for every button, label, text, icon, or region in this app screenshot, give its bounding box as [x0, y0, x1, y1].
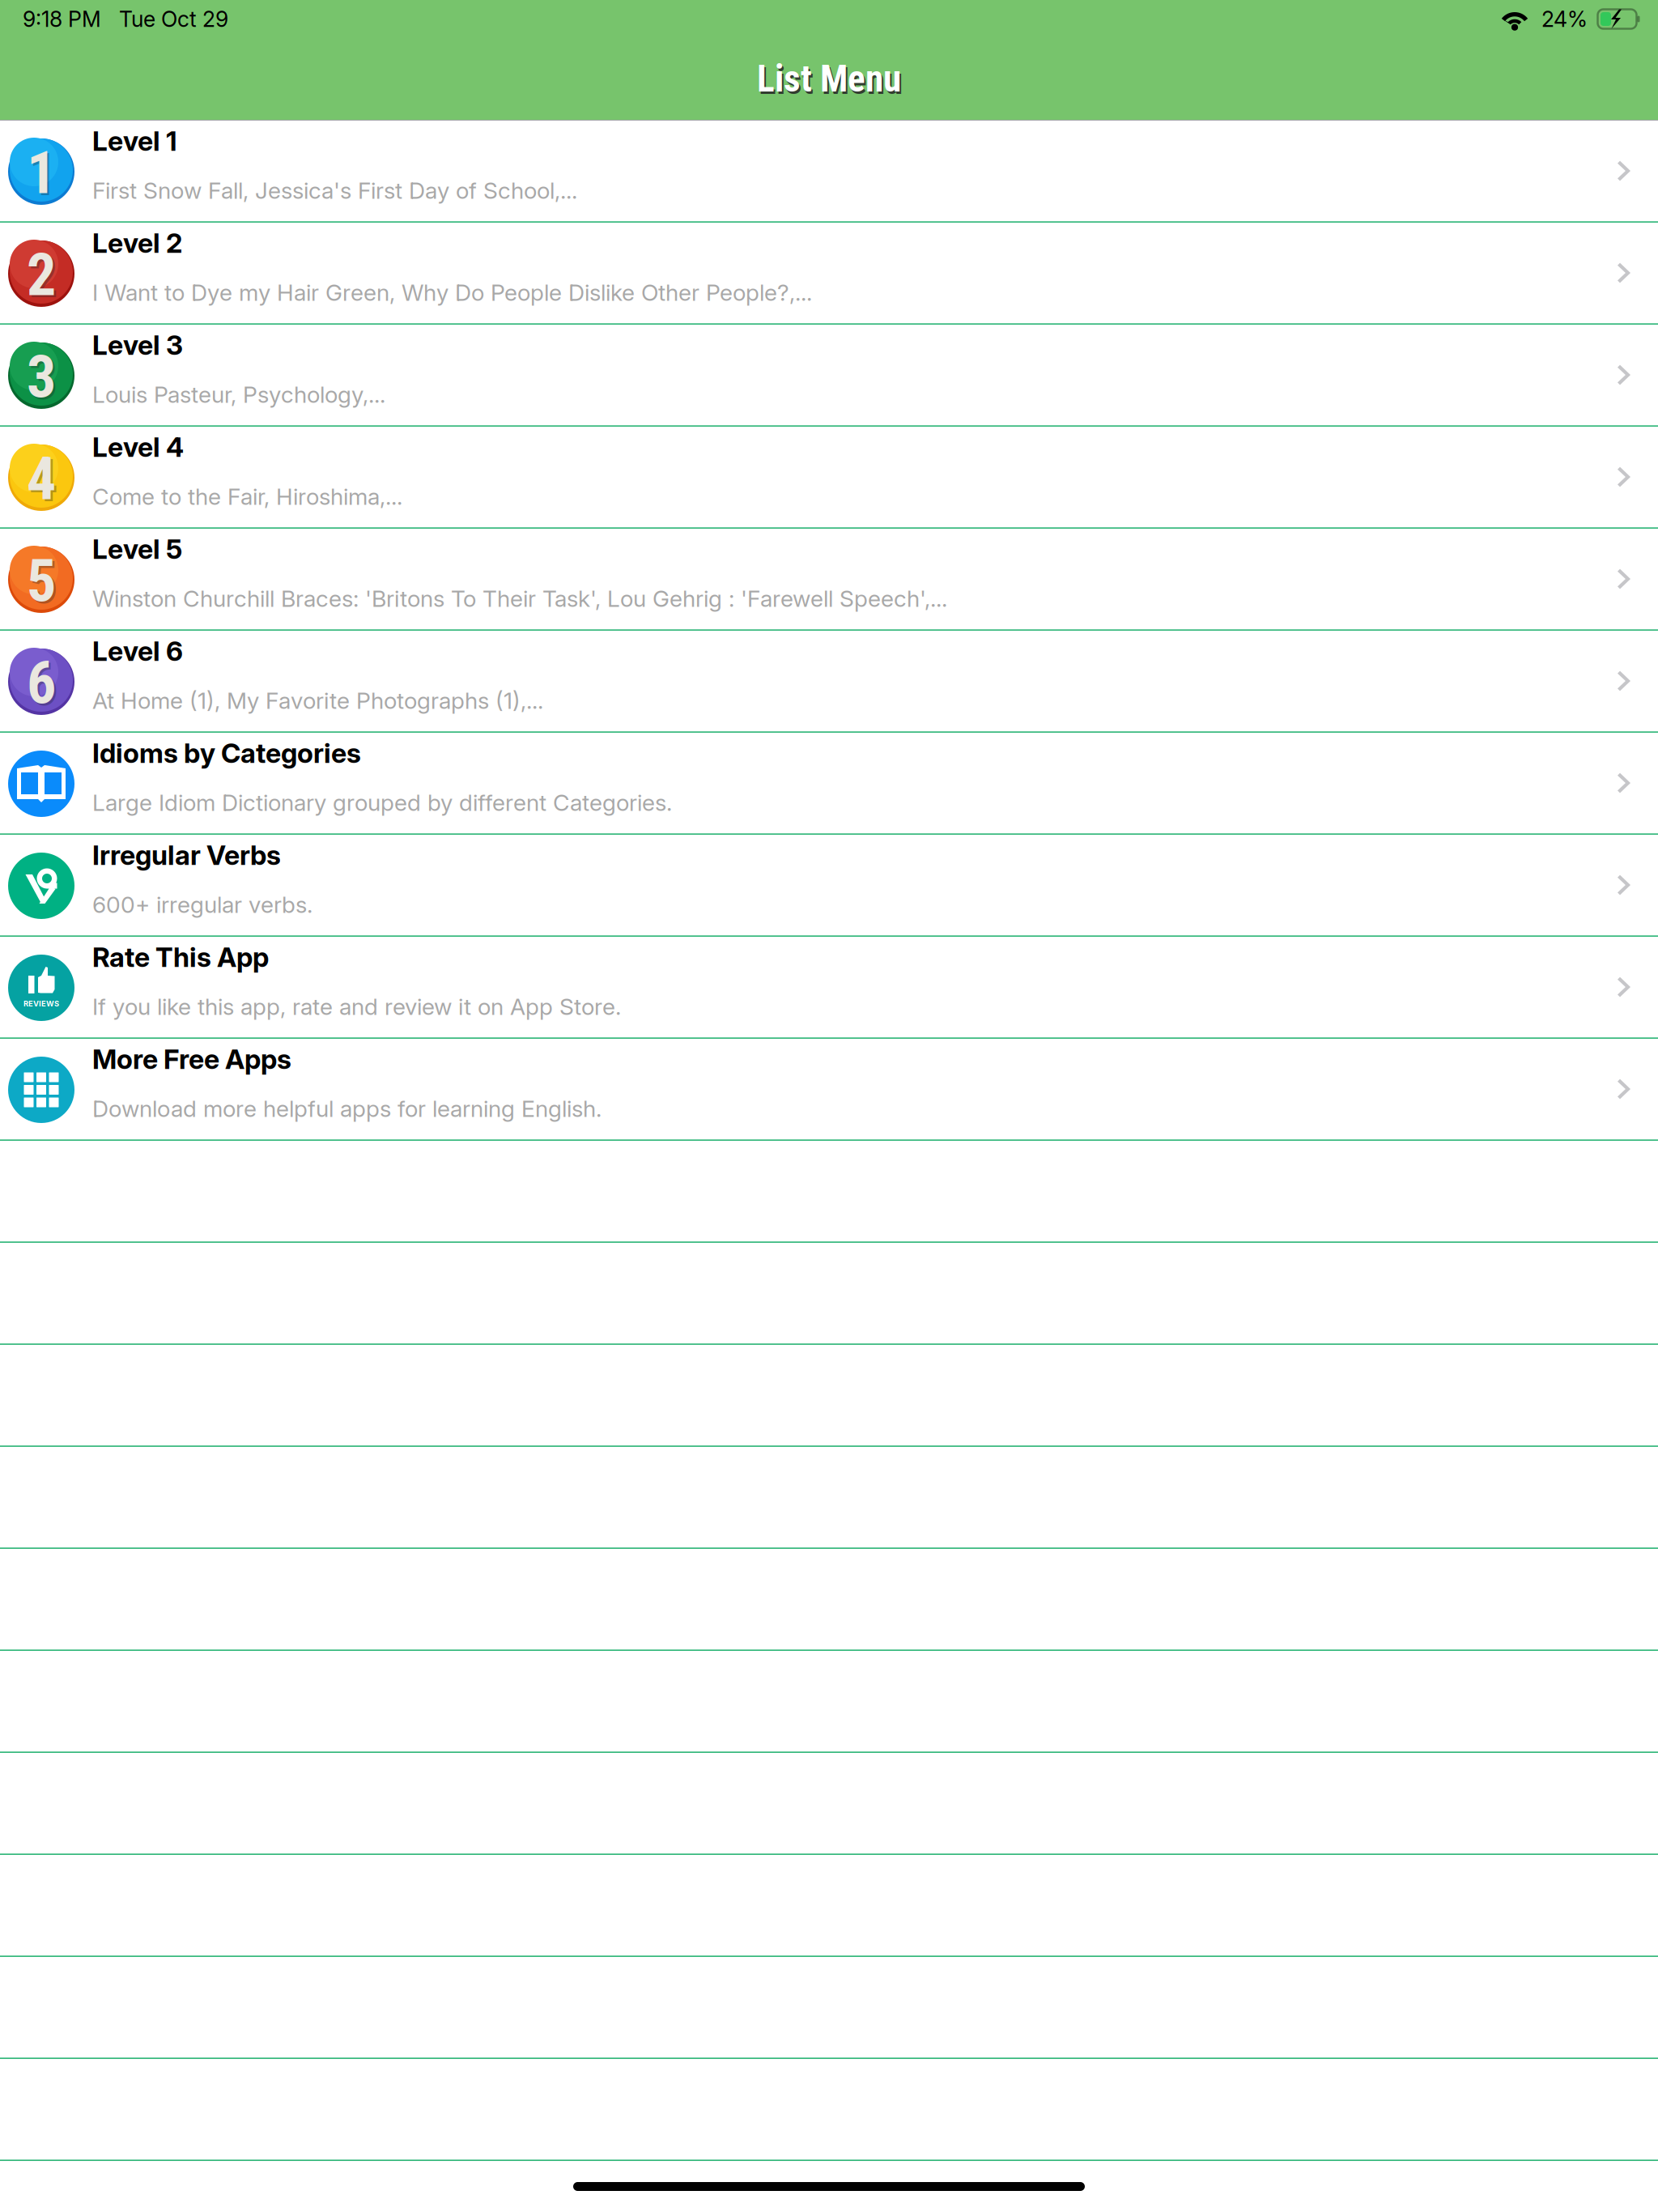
staticText: Rate This App	[92, 941, 269, 973]
button[interactable]: 4	[0, 427, 1658, 527]
staticText: 5	[29, 549, 58, 618]
button[interactable]: REVIEWS	[0, 937, 1658, 1037]
button[interactable]: 3	[0, 325, 1658, 425]
button[interactable]: 5	[0, 529, 1658, 629]
staticText: Level 6	[92, 635, 183, 667]
staticText: Louis Pasteur, Psychology,...	[92, 381, 385, 408]
staticText: List Menu	[759, 60, 903, 103]
staticText: Level 2	[92, 227, 182, 259]
staticText: 3	[27, 343, 56, 411]
staticText: 4	[29, 447, 58, 516]
staticText: More Free Apps	[92, 1043, 291, 1075]
staticText: Level 4	[92, 431, 184, 463]
staticText: 600+ irregular verbs.	[92, 891, 312, 918]
button[interactable]: 1	[0, 121, 1658, 221]
staticText: List Menu	[757, 57, 901, 100]
button[interactable]: 6	[0, 631, 1658, 731]
staticText: 4	[27, 445, 56, 513]
staticText: Irregular Verbs	[92, 839, 281, 871]
staticText: Winston Churchill Braces: 'Britons To Th…	[92, 585, 947, 612]
staticText: Tue Oct 29	[119, 6, 228, 32]
staticText: Level 5	[92, 533, 182, 565]
staticText: If you like this app, rate and review it…	[92, 993, 621, 1020]
staticText: 5	[27, 547, 56, 616]
staticText: 2	[27, 241, 56, 309]
staticText: First Snow Fall, Jessica's First Day of …	[92, 177, 577, 204]
staticText: 6	[29, 651, 58, 720]
staticText: Level 1	[92, 125, 177, 157]
staticText: 6	[27, 649, 56, 718]
button[interactable]: More Free Apps	[0, 1039, 1658, 1139]
button[interactable]: 2	[0, 223, 1658, 323]
staticText: I Want to Dye my Hair Green, Why Do Peop…	[92, 279, 812, 306]
staticText: 1	[29, 141, 58, 209]
staticText: Level 3	[92, 329, 183, 361]
staticText: 9:18 PM	[23, 6, 101, 32]
staticText: At Home (1), My Favorite Photographs (1)…	[92, 687, 543, 714]
staticText: 3	[29, 345, 58, 413]
staticText: Download more helpful apps for learning …	[92, 1095, 602, 1122]
staticText: Large Idiom Dictionary grouped by differ…	[92, 789, 672, 816]
button[interactable]: Idioms by Categories	[0, 733, 1658, 833]
staticText: Come to the Fair, Hiroshima,...	[92, 483, 402, 510]
staticText: Idioms by Categories	[92, 737, 361, 769]
staticText: REVIEWS	[23, 999, 59, 1008]
button[interactable]: Irregular Verbs	[0, 835, 1658, 935]
staticText: 2	[29, 243, 58, 311]
staticText: 24%	[1541, 6, 1588, 32]
staticText: 1	[27, 139, 56, 207]
